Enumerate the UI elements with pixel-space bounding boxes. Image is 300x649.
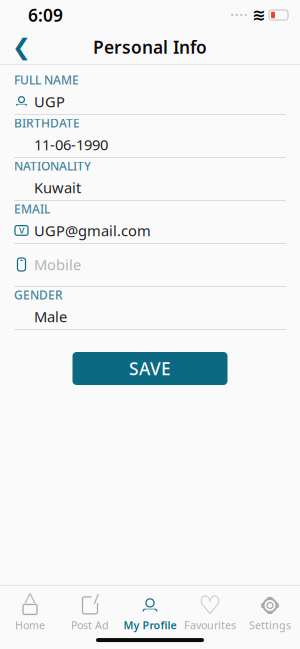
staticText: ^ (23, 585, 36, 615)
button[interactable]: SAVE (72, 352, 227, 385)
staticText: My Profile (123, 618, 176, 632)
staticText: NATIONALITY (14, 158, 91, 174)
button[interactable]: Settings (240, 590, 300, 638)
staticText: ♡ (198, 591, 221, 620)
staticText: ❮ (12, 34, 31, 60)
staticText: v (19, 222, 24, 236)
staticText: 11-06-1990 (34, 135, 108, 154)
staticText: Settings (249, 618, 291, 632)
staticText: / (93, 589, 98, 608)
staticText: ≋ (252, 6, 265, 24)
staticText: EMAIL (14, 201, 50, 217)
staticText: UGP (34, 92, 65, 111)
staticText: 6:09 (28, 3, 63, 26)
staticText: Home (15, 618, 45, 632)
staticText: Male (34, 307, 67, 326)
staticText: Post Ad (71, 618, 109, 632)
button[interactable]: Back (4, 28, 39, 66)
staticText: Personal Info (93, 35, 207, 58)
button[interactable]: / (60, 590, 120, 638)
staticText: Mobile (34, 255, 81, 274)
staticText: UGP@gmail.com (34, 221, 151, 240)
staticText: GENDER (14, 287, 63, 303)
button[interactable]: My Profile (120, 590, 180, 638)
staticText: BIRTHDATE (14, 115, 80, 131)
button[interactable]: ^ (0, 590, 60, 638)
staticText: FULL NAME (14, 72, 79, 88)
button[interactable]: ♡ (180, 590, 240, 638)
staticText: Favourites (184, 618, 236, 632)
staticText: Kuwait (34, 178, 81, 197)
staticText: SAVE (129, 357, 171, 380)
